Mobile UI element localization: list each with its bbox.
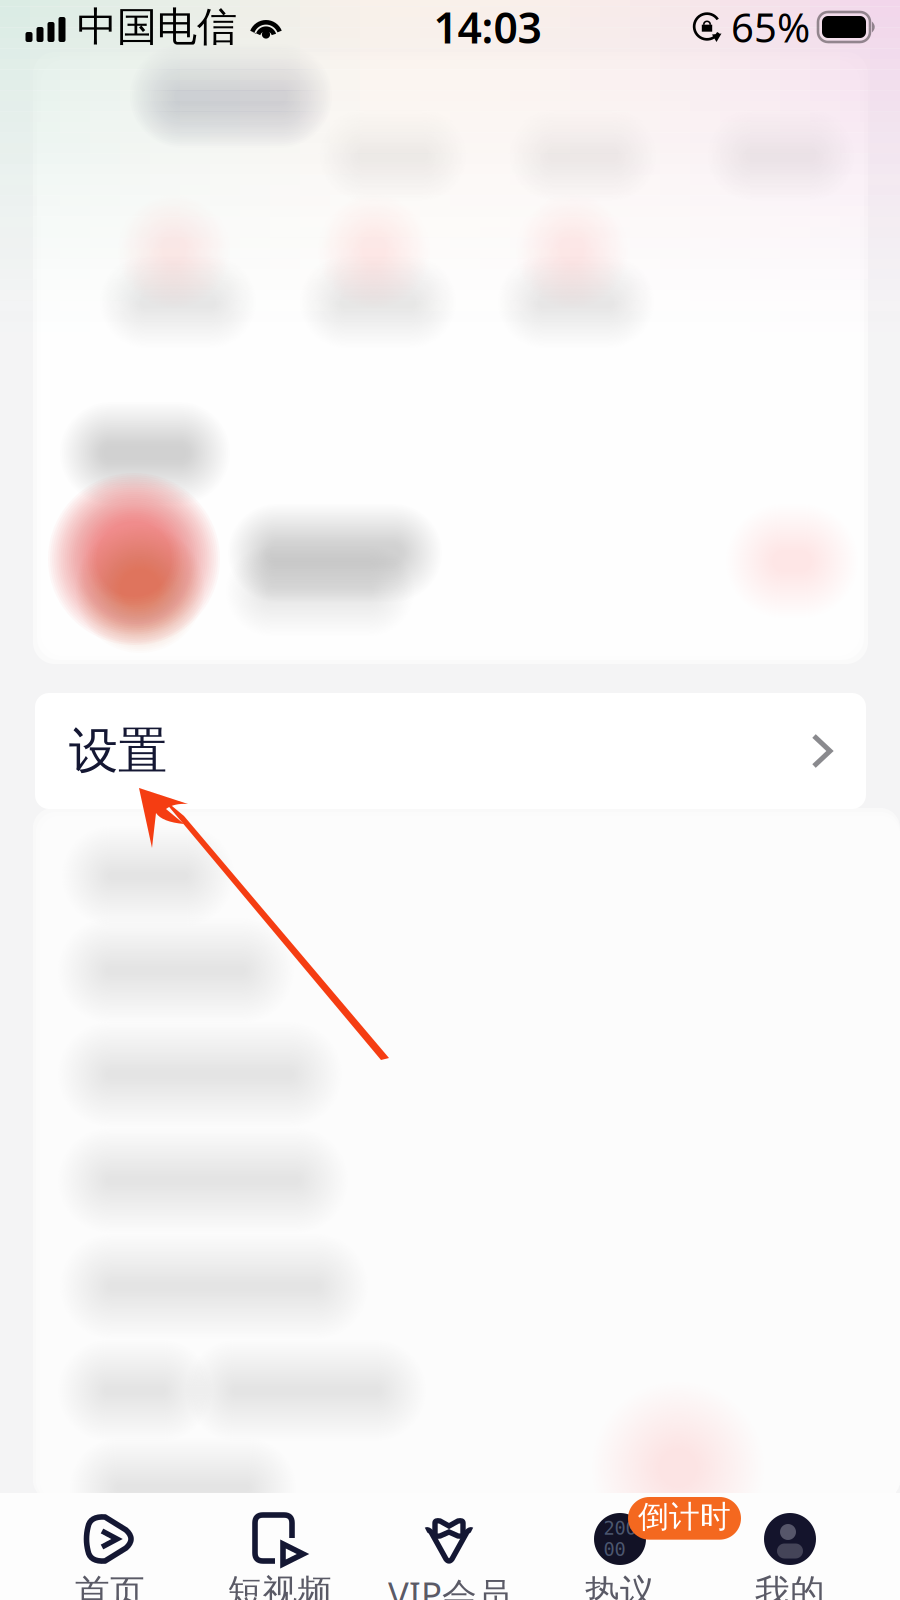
button[interactable]: 设置 — [35, 693, 866, 809]
staticText: 200 00 — [603, 1518, 636, 1560]
button[interactable]: 首页 — [25, 1511, 195, 1600]
button[interactable]: 200 00 — [535, 1511, 705, 1600]
staticText: 中国电信 — [77, 2, 237, 51]
staticText: 倒计时 — [638, 1498, 731, 1536]
staticText: 短视频 — [227, 1571, 332, 1600]
staticText: 14:03 — [433, 0, 541, 55]
staticText: 我的 — [755, 1571, 825, 1600]
staticText: VIP会员 — [388, 1571, 512, 1600]
staticText: 设置 — [69, 721, 167, 781]
staticText: 热议 — [585, 1571, 655, 1600]
button[interactable]: 我的 — [705, 1511, 875, 1600]
staticText: 首页 — [75, 1571, 145, 1600]
button[interactable]: 短视频 — [195, 1511, 365, 1600]
button[interactable]: VIP会员 — [365, 1511, 535, 1600]
staticText: 65% — [731, 0, 810, 53]
